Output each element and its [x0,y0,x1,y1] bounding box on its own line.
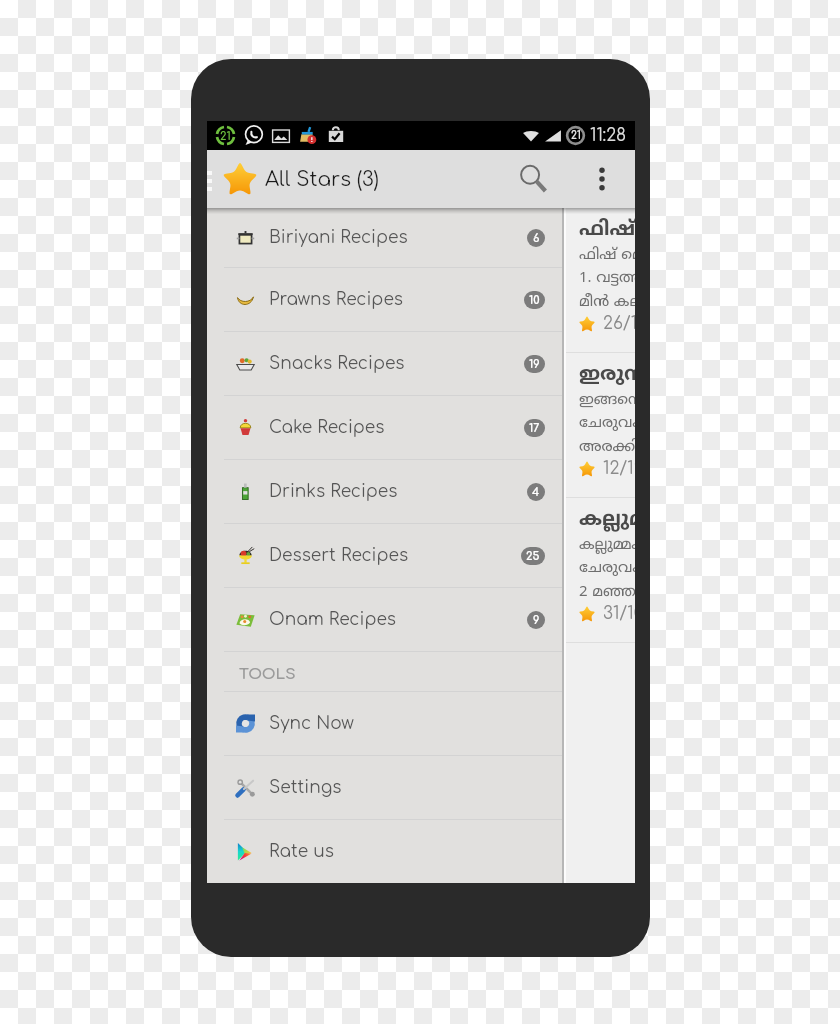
staticText: Cake Recipes [269,418,385,437]
staticText: Biriyani Recipes [269,228,408,247]
button[interactable]: Search [507,150,561,208]
staticText: Settings [269,778,342,797]
staticText: Dessert Recipes [269,546,409,565]
staticText: 10 [529,294,540,306]
staticText: 4 [532,486,540,498]
button[interactable]: Open navigation drawer [207,171,212,191]
staticText: മീൻ കലക്കി [579,293,635,312]
staticText: 6 [533,232,540,244]
staticText: Rate us [269,842,334,861]
staticText: Drinks Recipes [269,482,398,501]
button[interactable]: Cake Recipes [207,396,562,460]
staticText: 12/12 [603,459,635,478]
staticText: Prawns Recipes [269,290,403,309]
staticText: 25 [526,550,540,562]
staticText: കല്ലുമ്മക [579,536,635,555]
button[interactable]: Sync Now [207,692,562,756]
button[interactable]: Onam Recipes [207,588,562,652]
staticText: Onam Recipes [269,610,397,629]
button[interactable]: Settings [207,756,562,820]
staticText: ഇങ്ങനെ [579,391,635,410]
button[interactable]: Prawns Recipes [207,268,562,332]
button[interactable]: Dessert Recipes [207,524,562,588]
staticText: 31/10 [603,604,635,623]
staticText: കല്ലുമ്മ [579,508,635,533]
button[interactable]: Rate us [207,820,562,883]
staticText: Sync Now [269,714,354,733]
staticText: TOOLS [239,666,296,683]
staticText: ചേരുവക് [579,559,635,578]
staticText: 21 [220,130,231,142]
staticText: ഇരുമ്പൻ [579,363,635,388]
staticText: അരക്കിയ [579,438,635,457]
staticText: 11:28 [590,126,627,145]
button[interactable]: Snacks Recipes [207,332,562,396]
staticText: 9 [533,614,540,626]
button[interactable]: Biriyani Recipes [207,208,562,268]
staticText: 1. വട്ടത്തി [579,269,635,288]
staticText: 21 [571,130,581,141]
staticText: 17 [529,422,540,434]
staticText: All Stars (3) [265,168,379,190]
staticText: 2 മഞ്ഞള് [579,583,635,602]
staticText: ഫിഷ് മൊല [579,246,635,265]
button[interactable]: More options [578,150,626,208]
button[interactable]: Drinks Recipes [207,460,562,524]
staticText: 19 [529,358,540,370]
staticText: 26/12 [603,314,635,333]
staticText: ചേരുവക് [579,414,635,433]
staticText: ഫിഷ് മൊലക് [579,218,635,243]
staticText: Snacks Recipes [269,354,405,373]
